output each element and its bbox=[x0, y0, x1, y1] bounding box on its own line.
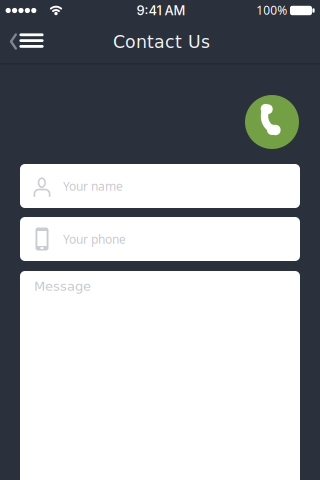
staticText: Your phone bbox=[63, 231, 126, 247]
button[interactable]: Your phone bbox=[20, 217, 300, 261]
staticText: Message bbox=[34, 278, 91, 294]
button[interactable]: Message bbox=[20, 271, 300, 480]
button[interactable]: Your name bbox=[20, 164, 300, 208]
staticText: Your name bbox=[63, 178, 123, 194]
button[interactable]: Menu bbox=[4, 24, 52, 60]
staticText: 100% bbox=[256, 2, 287, 18]
staticText: 9:41 AM bbox=[136, 3, 185, 18]
button[interactable]: Call bbox=[245, 95, 299, 149]
staticText: Contact Us bbox=[113, 32, 210, 52]
